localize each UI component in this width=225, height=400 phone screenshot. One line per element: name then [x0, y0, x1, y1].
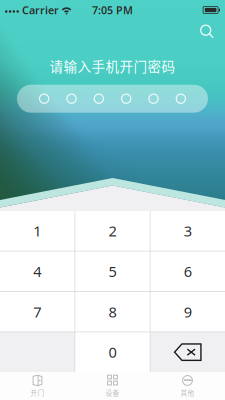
button[interactable]: 其他 [150, 372, 225, 400]
button[interactable]: 1 [0, 211, 74, 251]
staticText: 1 [33, 221, 41, 241]
button[interactable]: Search [195, 20, 217, 42]
button[interactable]: 9 [150, 292, 225, 332]
button[interactable]: 6 [150, 251, 225, 291]
staticText: 开门 [30, 388, 44, 397]
button[interactable]: 2 [75, 211, 150, 251]
staticText: 设备 [105, 388, 119, 397]
button[interactable]: Delete [150, 332, 225, 372]
button[interactable]: 4 [0, 251, 74, 291]
button[interactable]: 5 [75, 251, 150, 291]
button[interactable]: 8 [75, 292, 150, 332]
staticText: 4 [33, 261, 41, 281]
staticText: Carrier [22, 3, 59, 17]
button[interactable]: 开门 [0, 372, 75, 400]
button[interactable]: 7 [0, 292, 74, 332]
staticText: 其他 [180, 388, 194, 397]
staticText: 5 [108, 261, 116, 281]
button[interactable]: 3 [150, 211, 225, 251]
button[interactable]: 0 [75, 332, 150, 372]
staticText: 0 [108, 342, 116, 362]
staticText: 7:05 PM [92, 3, 133, 17]
staticText: 请输入手机开门密码 [49, 56, 175, 76]
staticText: 8 [108, 302, 116, 321]
button[interactable]: 设备 [75, 372, 150, 400]
staticText: 6 [184, 261, 192, 281]
staticText: 2 [108, 221, 116, 241]
staticText: 7 [33, 302, 41, 321]
staticText: 3 [184, 221, 192, 241]
staticText: 9 [184, 302, 192, 321]
